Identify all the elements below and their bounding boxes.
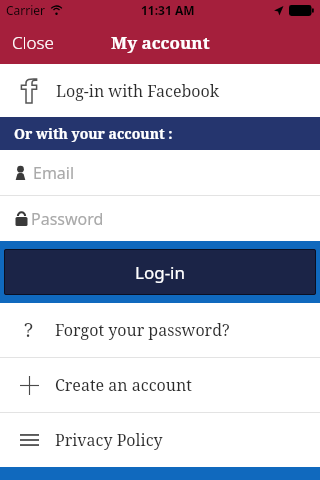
staticText: My account	[111, 31, 210, 54]
staticText: Password	[31, 208, 104, 230]
button[interactable]: Log-in	[4, 249, 316, 295]
button[interactable]: ?	[0, 303, 320, 357]
button[interactable]: Close	[0, 23, 66, 62]
button[interactable]: Privacy Policy	[0, 413, 320, 467]
staticText: Privacy Policy	[55, 429, 163, 451]
staticText: ?	[24, 317, 34, 343]
button[interactable]: Password	[0, 196, 320, 241]
staticText: Create an account	[55, 374, 192, 396]
button[interactable]: Create an account	[0, 358, 320, 412]
staticText: Forgot your password?	[55, 319, 230, 341]
button[interactable]: Log-in with Facebook	[0, 64, 320, 117]
staticText: 11:31 AM	[141, 2, 195, 18]
staticText: Log-in with Facebook	[56, 80, 220, 102]
staticText: Log-in	[135, 261, 186, 284]
staticText: Close	[12, 31, 54, 54]
staticText: Carrier	[6, 2, 46, 18]
staticText: Email	[33, 162, 75, 184]
button[interactable]: Email	[0, 150, 320, 195]
staticText: Or with your account :	[14, 124, 173, 143]
